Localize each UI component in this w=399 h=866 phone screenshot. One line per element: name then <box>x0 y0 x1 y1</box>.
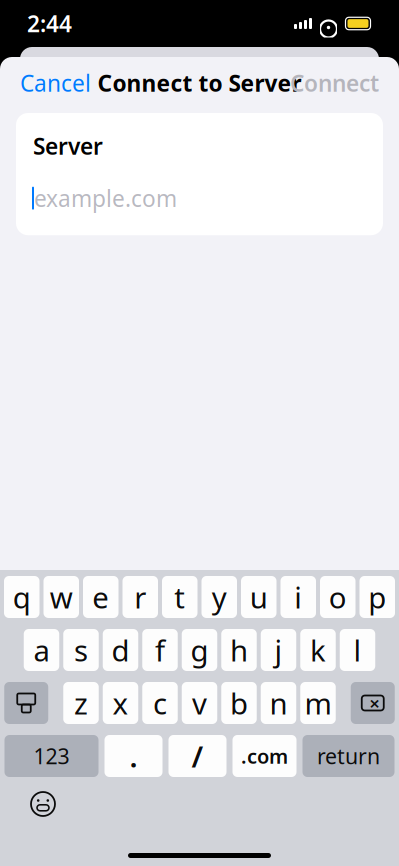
button[interactable]: Connect <box>286 60 383 106</box>
button[interactable]: s <box>63 629 99 671</box>
button[interactable]: b <box>221 682 257 724</box>
staticText: c <box>153 683 167 722</box>
button[interactable]: j <box>261 629 296 671</box>
button[interactable]: l <box>340 629 375 671</box>
staticText: z <box>74 683 88 722</box>
button[interactable]: .com <box>232 735 296 777</box>
button[interactable]: v <box>182 682 217 724</box>
staticText: return <box>317 742 380 770</box>
button[interactable]: d <box>103 629 138 671</box>
staticText: / <box>191 736 203 775</box>
button[interactable]: k <box>300 629 336 671</box>
staticText: Connect <box>290 68 379 98</box>
staticText: d <box>111 630 129 669</box>
button[interactable]: g <box>182 629 217 671</box>
staticText: m <box>304 683 331 722</box>
staticText: r <box>134 577 146 616</box>
staticText: Connect to Server <box>97 68 301 98</box>
staticText: Cancel <box>20 68 91 98</box>
staticText: e <box>92 577 109 616</box>
staticText: 2:44 <box>27 8 72 38</box>
staticText: n <box>269 683 287 722</box>
staticText: example.com <box>34 183 177 213</box>
staticText: . <box>129 736 137 775</box>
button[interactable]: × <box>351 682 395 724</box>
staticText: w <box>50 577 73 616</box>
button[interactable]: c <box>142 682 178 724</box>
staticText: a <box>33 630 49 669</box>
button[interactable]: n <box>261 682 296 724</box>
staticText: v <box>192 683 207 722</box>
button[interactable]: e <box>83 576 118 618</box>
staticText: h <box>230 630 248 669</box>
button[interactable]: p <box>359 576 395 618</box>
button[interactable]: h <box>221 629 257 671</box>
button[interactable]: . <box>104 735 162 777</box>
button[interactable] <box>4 682 48 724</box>
staticText: l <box>353 630 361 669</box>
button[interactable]: y <box>201 576 237 618</box>
staticText: j <box>274 630 282 669</box>
staticText: f <box>155 630 165 669</box>
button[interactable]: z <box>63 682 99 724</box>
button[interactable]: i <box>280 576 316 618</box>
staticText: k <box>310 630 326 669</box>
button[interactable]: o <box>320 576 355 618</box>
staticText: q <box>13 577 31 616</box>
staticText: o <box>329 577 347 616</box>
staticText: y <box>212 577 227 616</box>
staticText: x <box>112 683 128 722</box>
staticText: × <box>369 691 380 715</box>
staticText: b <box>230 683 248 722</box>
button[interactable]: a <box>24 629 59 671</box>
button[interactable]: r <box>122 576 158 618</box>
button[interactable]: / <box>168 735 226 777</box>
button[interactable]: f <box>142 629 178 671</box>
button[interactable]: x <box>103 682 138 724</box>
staticText: p <box>368 577 386 616</box>
button[interactable]: m <box>300 682 336 724</box>
button[interactable]: t <box>162 576 197 618</box>
button[interactable]: q <box>4 576 39 618</box>
staticText: t <box>174 577 185 616</box>
button[interactable]: w <box>43 576 79 618</box>
staticText: Server <box>33 131 103 161</box>
button[interactable]: u <box>241 576 276 618</box>
staticText: .com <box>241 743 288 769</box>
staticText: i <box>294 577 302 616</box>
staticText: g <box>190 630 208 669</box>
button[interactable]: return <box>302 735 394 777</box>
button[interactable]: 123 <box>4 735 98 777</box>
button[interactable]: Cancel <box>16 60 95 106</box>
staticText: u <box>250 577 268 616</box>
staticText: s <box>74 630 88 669</box>
staticText: 123 <box>33 742 69 770</box>
button[interactable] <box>26 787 60 821</box>
